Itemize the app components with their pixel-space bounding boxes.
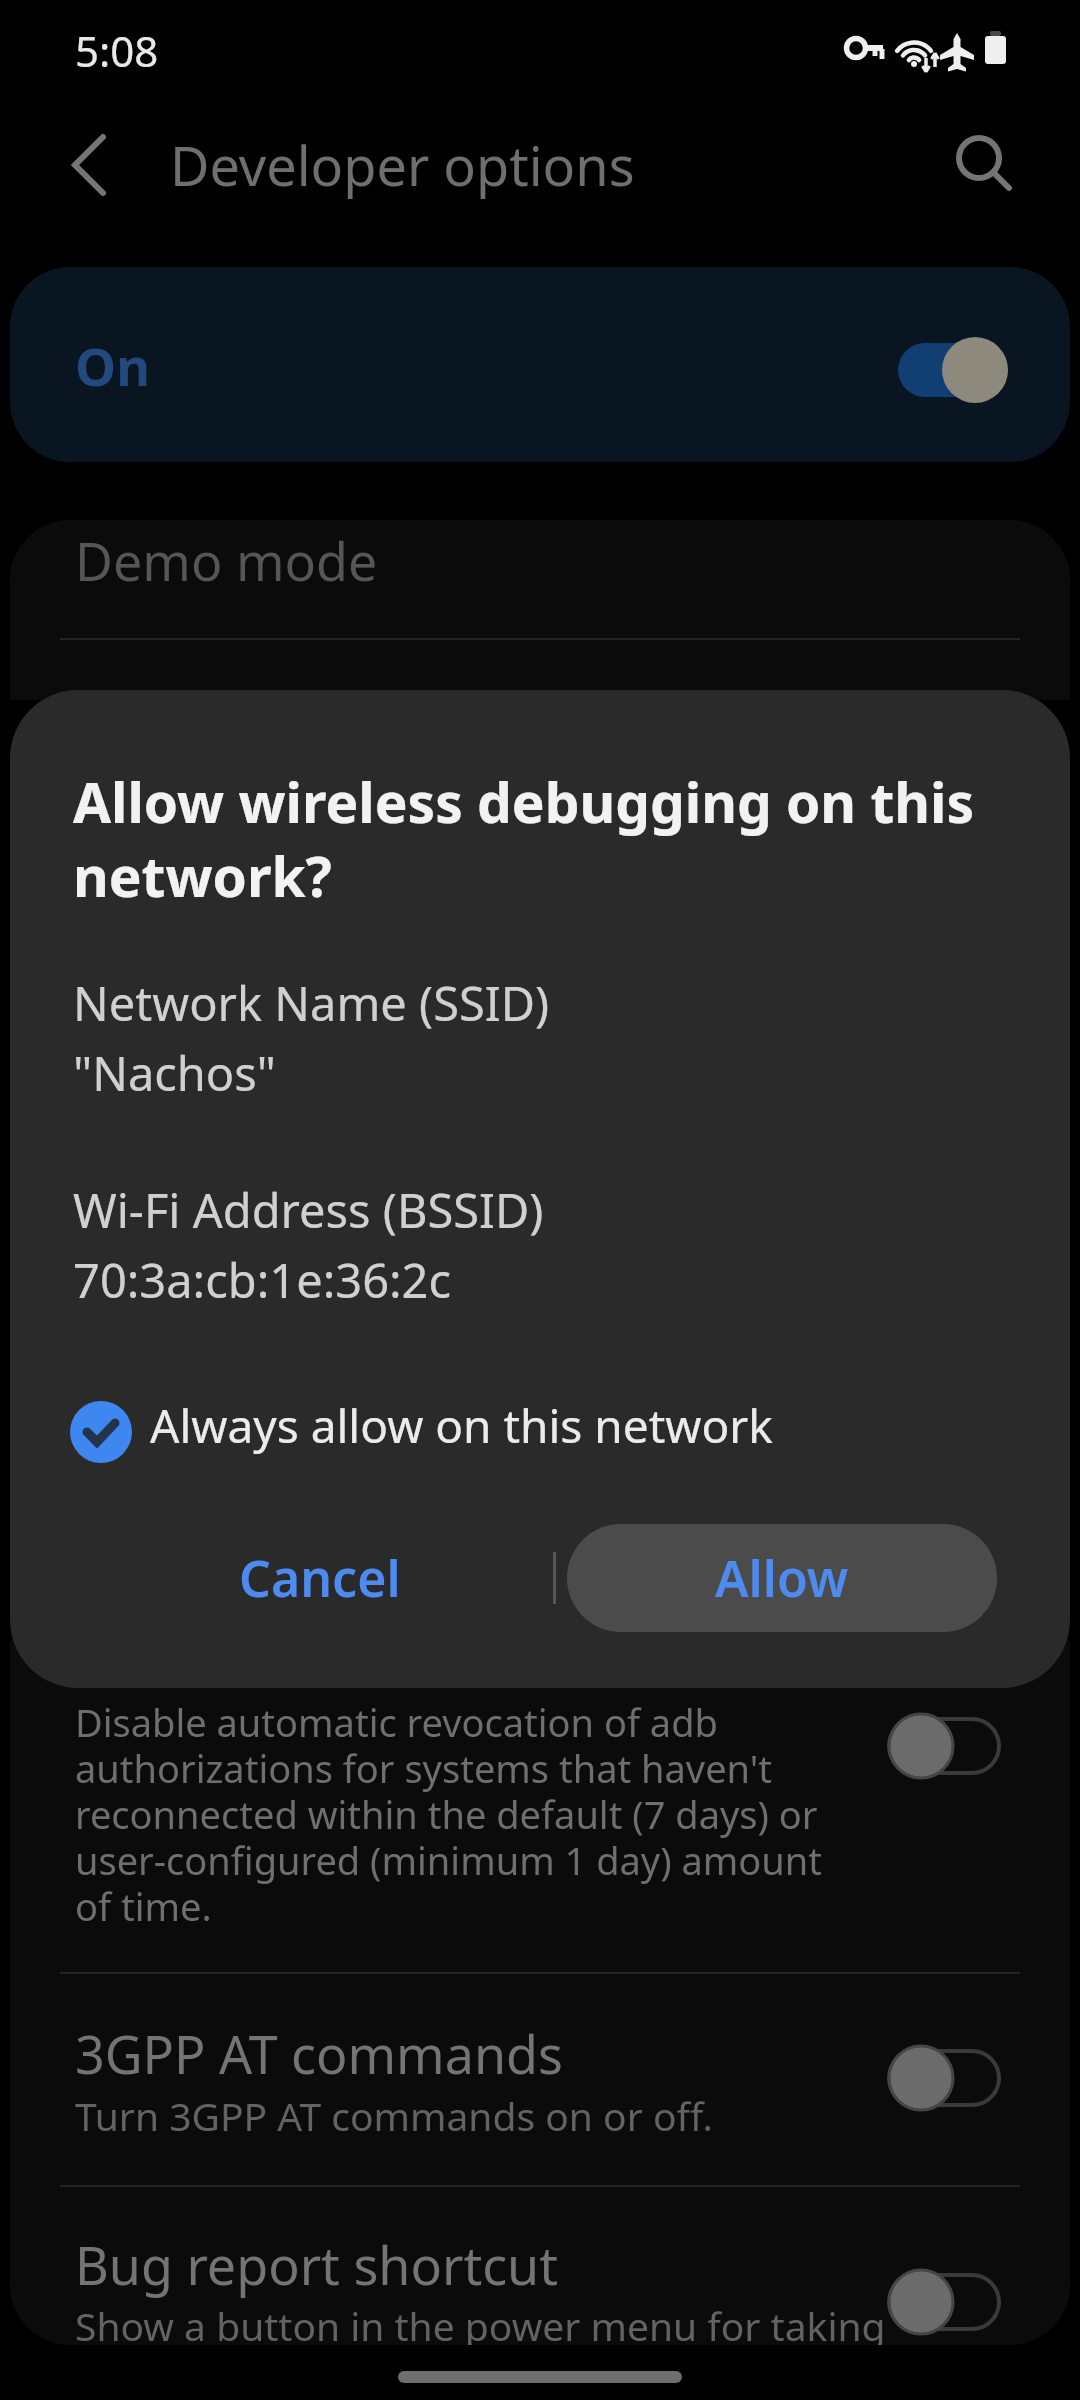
button[interactable]: 3GPP AT commands (10, 2000, 1070, 2180)
staticText: Turn 3GPP AT commands on or off. (75, 2089, 714, 2142)
staticText: of time. (75, 1880, 212, 1932)
staticText: authorizations for systems that haven't (75, 1742, 772, 1794)
button[interactable]: Always allow on this network (50, 1393, 750, 1471)
button[interactable]: Cancel (105, 1524, 535, 1632)
staticText: Network Name (SSID) (73, 971, 550, 1035)
staticText: Allow (715, 1544, 849, 1612)
staticText: 70:3a:cb:1e:36:2c (73, 1248, 452, 1312)
staticText: "Nachos" (73, 1041, 276, 1105)
staticText: Wi-Fi Address (BSSID) (73, 1178, 544, 1242)
staticText: Cancel (239, 1544, 401, 1612)
staticText: user-configured (minimum 1 day) amount (75, 1834, 823, 1886)
staticText: Allow wireless debugging on this (73, 764, 975, 839)
button[interactable] (945, 125, 1025, 205)
staticText: reconnected within the default (7 days) … (75, 1788, 818, 1840)
staticText: Demo mode (75, 525, 378, 596)
staticText: Always allow on this network (150, 1394, 773, 1457)
staticText: On (75, 330, 150, 401)
button[interactable]: On (10, 267, 1070, 462)
staticText: Developer options (170, 128, 635, 202)
staticText: Disable automatic revocation of adb (75, 1696, 718, 1748)
staticText: Show a button in the power menu for taki… (75, 2299, 886, 2345)
button[interactable] (55, 125, 135, 205)
staticText: Bug report shortcut (75, 2229, 559, 2300)
button[interactable]: Allow (567, 1524, 997, 1632)
button[interactable]: Bug report shortcut (10, 2210, 1070, 2345)
staticText: network? (73, 838, 332, 913)
staticText: 5:08 (75, 22, 159, 79)
staticText: 3GPP AT commands (75, 2018, 563, 2089)
